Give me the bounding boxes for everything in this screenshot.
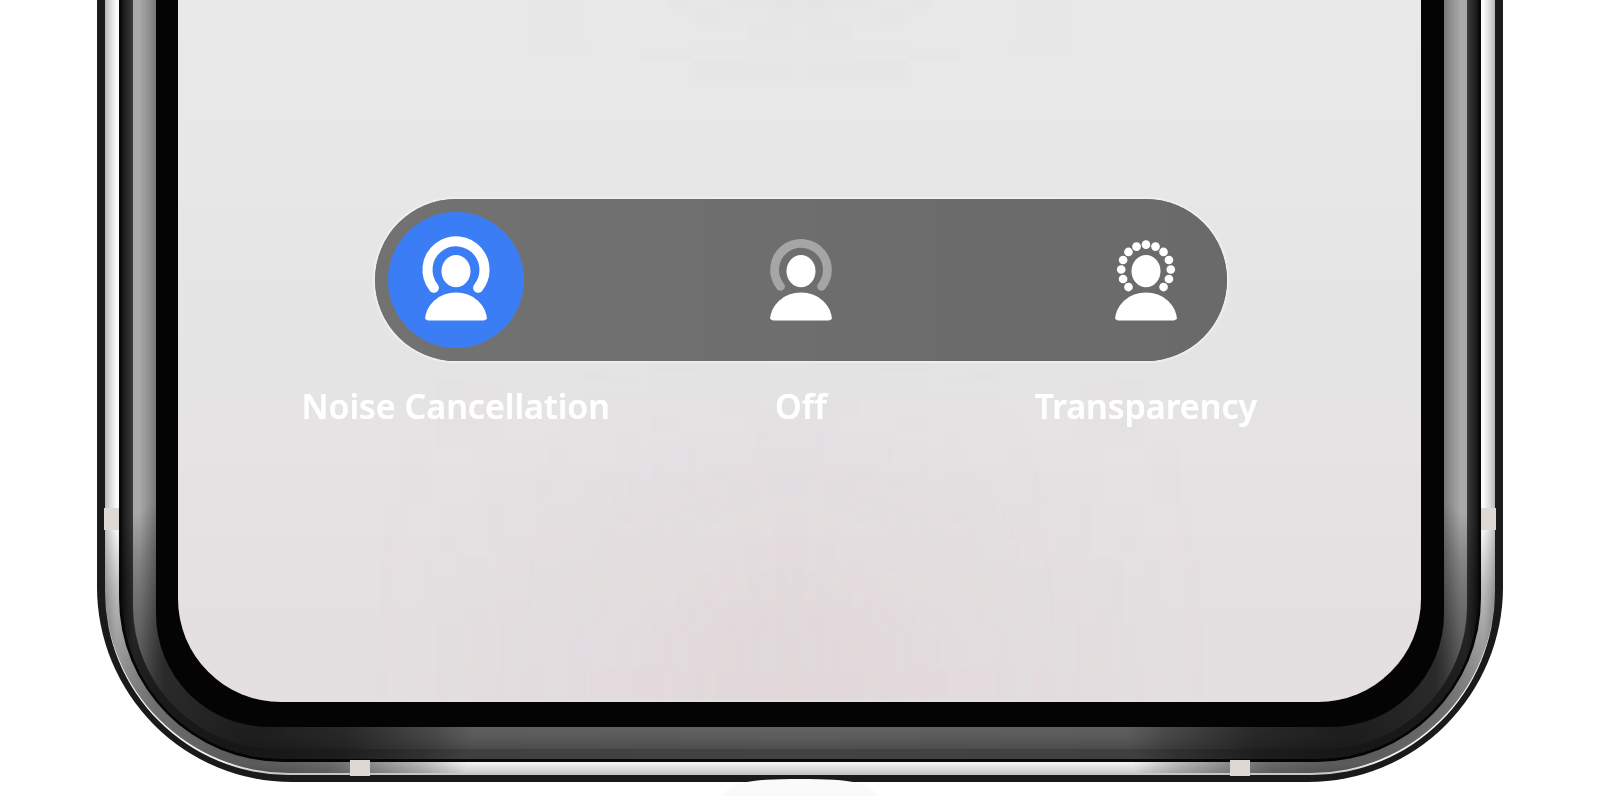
button[interactable]: Transparency [943,199,1227,361]
button[interactable]: Off [659,199,943,361]
button[interactable]: Noise Cancellation [375,199,659,361]
